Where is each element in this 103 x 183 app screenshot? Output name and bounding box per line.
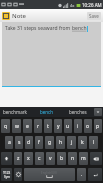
button[interactable]: Settings: [14, 168, 22, 181]
staticText: a: [8, 139, 11, 146]
button[interactable]: i: [74, 119, 82, 133]
staticText: o: [86, 123, 90, 130]
button[interactable]: bench: [31, 107, 62, 117]
button[interactable]: c: [35, 152, 44, 165]
button[interactable]: b: [57, 152, 66, 165]
staticText: z: [17, 155, 20, 162]
button[interactable]: Shift: [1, 152, 12, 165]
button[interactable]: q: [1, 119, 10, 133]
staticText: v: [49, 155, 52, 162]
staticText: Sym: [4, 175, 10, 179]
staticText: x: [27, 155, 30, 162]
button[interactable]: x: [24, 152, 33, 165]
staticText: benchmark: [3, 109, 28, 115]
button[interactable]: .: [77, 168, 86, 181]
staticText: q: [4, 123, 8, 130]
button[interactable]: t: [44, 119, 52, 133]
staticText: c: [38, 155, 41, 162]
button[interactable]: d: [25, 136, 33, 149]
button[interactable]: Take 31 steps seaward from: [2, 22, 101, 86]
staticText: b: [60, 155, 64, 162]
staticText: k: [81, 139, 84, 146]
button[interactable]: j: [67, 136, 76, 149]
staticText: p: [96, 123, 100, 130]
button[interactable]: h: [56, 136, 65, 149]
button[interactable]: u: [64, 119, 72, 133]
button[interactable]: More suggestions: [94, 108, 102, 116]
staticText: h: [59, 139, 63, 146]
staticText: f: [38, 139, 40, 146]
staticText: m: [81, 155, 86, 162]
button[interactable]: f: [35, 136, 43, 149]
button[interactable]: m: [79, 152, 88, 165]
button[interactable]: Enter: [88, 168, 102, 181]
button[interactable]: Backspace: [90, 152, 102, 165]
staticText: bench: [40, 109, 54, 115]
staticText: !?123: [3, 171, 11, 175]
button[interactable]: benchmark: [0, 107, 31, 117]
button[interactable]: r: [34, 119, 42, 133]
button[interactable]: a: [5, 136, 13, 149]
button[interactable]: s: [15, 136, 23, 149]
button[interactable]: k: [78, 136, 87, 149]
button[interactable]: z: [14, 152, 22, 165]
staticText: benches: [69, 109, 87, 115]
staticText: i: [77, 123, 79, 130]
staticText: .: [81, 171, 83, 178]
staticText: 4x: [70, 3, 75, 8]
staticText: w: [15, 123, 19, 130]
staticText: y: [57, 123, 60, 130]
staticText: Take 31 steps seaward from: [5, 25, 72, 32]
staticText: j: [71, 139, 73, 146]
button[interactable]: y: [54, 119, 62, 133]
staticText: s: [18, 139, 21, 146]
staticText: bench: [72, 25, 87, 32]
staticText: u: [66, 123, 70, 130]
staticText: Save: [89, 13, 99, 19]
staticText: n: [71, 155, 75, 162]
button[interactable]: !?123: [1, 168, 12, 181]
staticText: l: [93, 139, 95, 146]
staticText: d: [27, 139, 31, 146]
button[interactable]: Space: [24, 168, 75, 181]
button[interactable]: w: [12, 119, 21, 133]
button[interactable]: e: [23, 119, 32, 133]
button[interactable]: Save: [87, 12, 101, 20]
staticText: r: [37, 123, 40, 130]
staticText: Note: [12, 12, 27, 20]
staticText: 10:26 AM: [82, 2, 102, 8]
button[interactable]: g: [45, 136, 54, 149]
button[interactable]: benches: [62, 107, 93, 117]
button[interactable]: App icon: [2, 12, 10, 20]
button[interactable]: v: [46, 152, 55, 165]
staticText: t: [47, 123, 49, 130]
button[interactable]: p: [94, 119, 102, 133]
button[interactable]: l: [89, 136, 98, 149]
staticText: English(UK): [41, 171, 58, 175]
button[interactable]: n: [68, 152, 77, 165]
button[interactable]: o: [84, 119, 92, 133]
staticText: g: [48, 139, 52, 146]
staticText: e: [26, 123, 29, 130]
